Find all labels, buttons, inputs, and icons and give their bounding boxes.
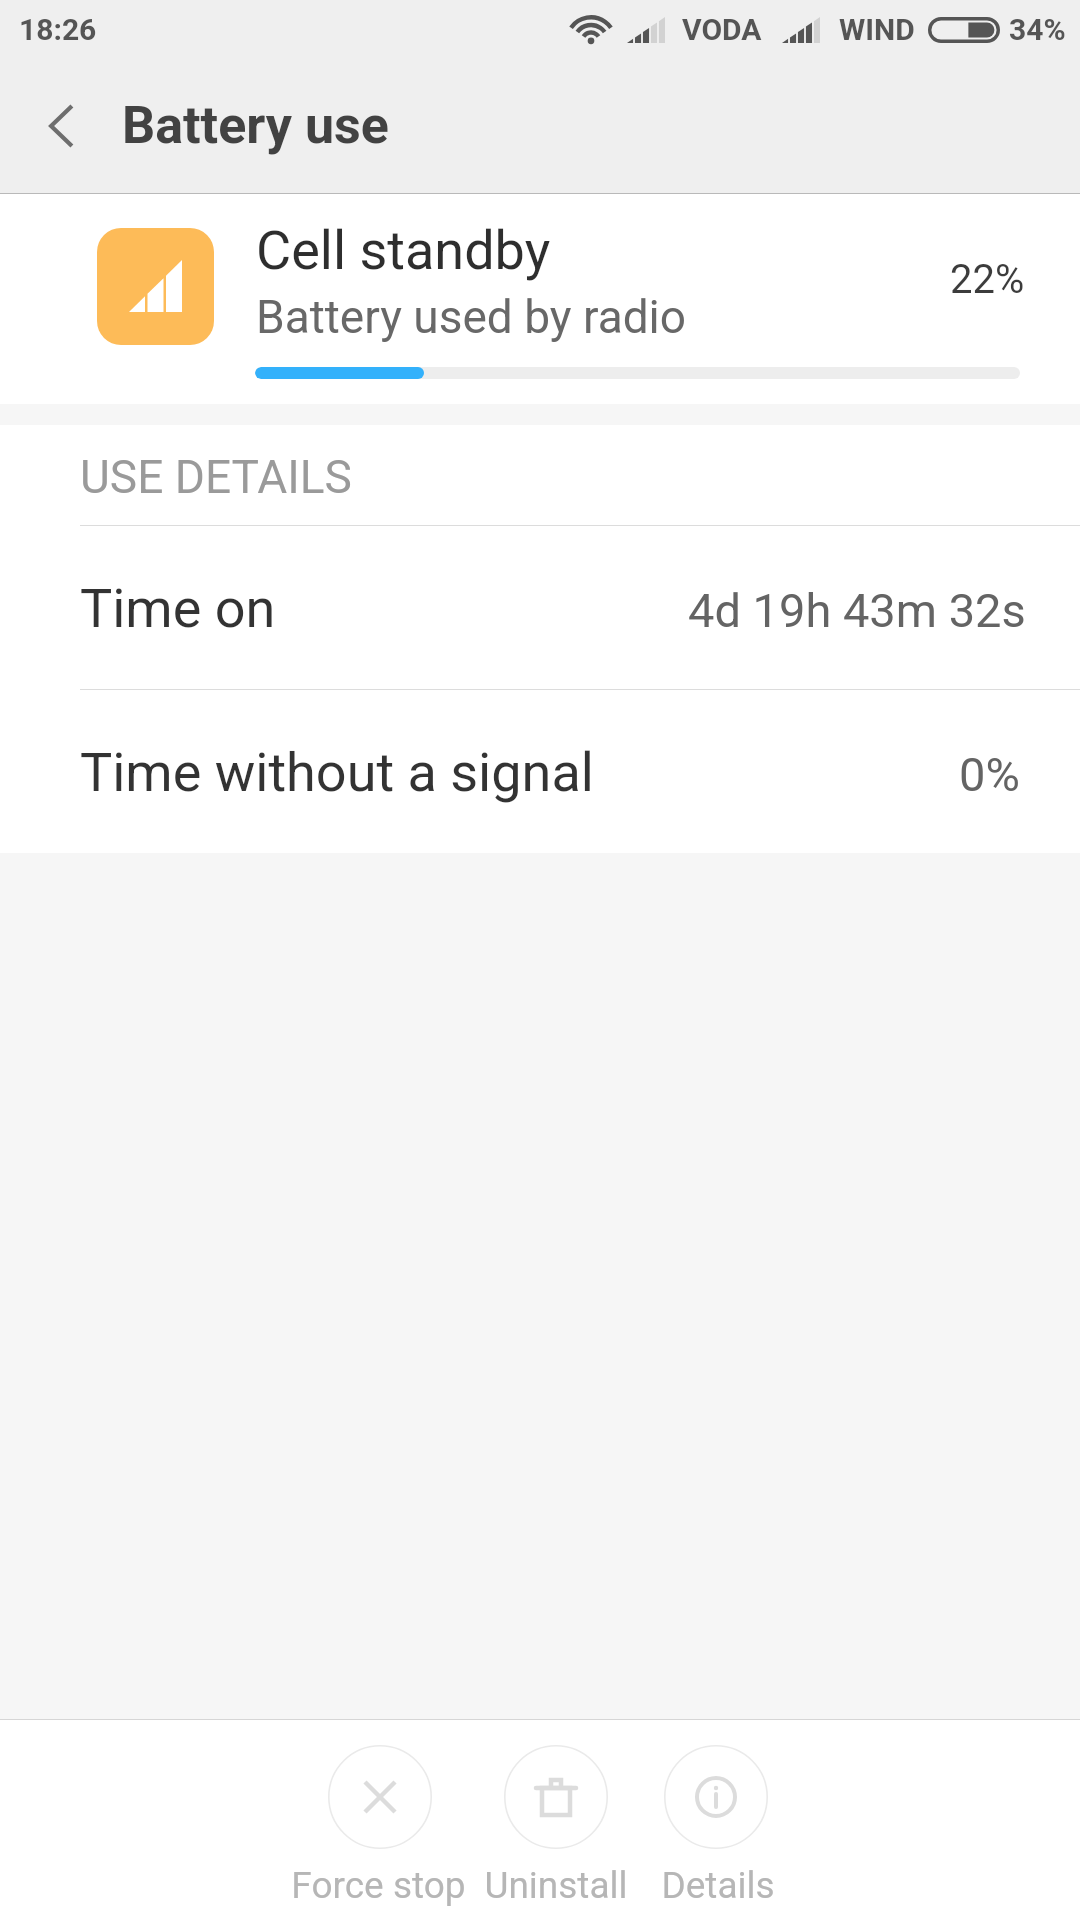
button[interactable]: Force stop — [290, 1731, 468, 1911]
staticText: WIND — [839, 12, 915, 47]
staticText: 4d 19h 43m 32s — [688, 583, 1026, 638]
staticText: VODA — [682, 12, 762, 47]
staticText: 0% — [959, 747, 1020, 802]
staticText: Time on — [80, 577, 276, 640]
button[interactable]: Time on — [0, 525, 1080, 689]
staticText: USE DETAILS — [80, 450, 352, 504]
staticText: Details — [661, 1864, 775, 1907]
staticText: 22% — [950, 256, 1025, 303]
button[interactable]: Time without a signal — [0, 689, 1080, 853]
staticText: Cell standby — [256, 219, 551, 282]
staticText: 18:26 — [19, 12, 97, 47]
button[interactable]: Uninstall — [468, 1731, 636, 1911]
staticText: Battery used by radio — [256, 290, 687, 344]
button[interactable]: Cell standby — [0, 194, 1080, 404]
button[interactable]: Back — [0, 60, 122, 194]
staticText: Uninstall — [484, 1864, 628, 1907]
staticText: Force stop — [291, 1864, 466, 1907]
button[interactable]: Details — [636, 1731, 796, 1911]
staticText: Time without a signal — [80, 741, 594, 804]
staticText: Battery use — [122, 95, 389, 156]
staticText: 34% — [1009, 12, 1066, 47]
